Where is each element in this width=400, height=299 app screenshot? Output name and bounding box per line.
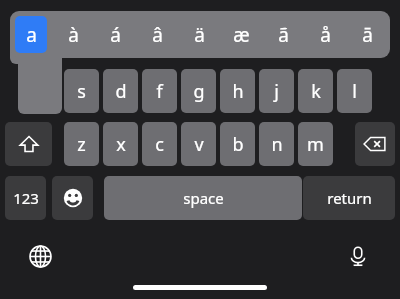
staticText: ã: [278, 22, 289, 48]
staticText: f: [156, 79, 163, 104]
staticText: c: [155, 132, 164, 157]
button[interactable]: j: [259, 69, 294, 113]
button[interactable]: á: [99, 16, 131, 53]
staticText: ä: [194, 22, 205, 48]
button[interactable]: h: [220, 69, 255, 113]
button[interactable]: n: [259, 122, 294, 166]
button[interactable]: l: [337, 69, 372, 113]
button[interactable]: d: [103, 69, 138, 113]
button[interactable]: Next keyboard: [27, 243, 53, 269]
staticText: à: [68, 22, 79, 48]
button[interactable]: Backspace: [355, 122, 395, 166]
button[interactable]: m: [298, 122, 333, 166]
button[interactable]: å: [309, 16, 341, 53]
staticText: space: [183, 188, 224, 208]
button[interactable]: g: [181, 69, 216, 113]
button[interactable]: v: [181, 122, 216, 166]
button[interactable]: f: [142, 69, 177, 113]
staticText: v: [194, 132, 204, 157]
staticText: æ: [233, 22, 250, 48]
button[interactable]: ã: [267, 16, 299, 53]
staticText: â: [152, 22, 163, 48]
button[interactable]: ä: [183, 16, 215, 53]
button[interactable]: Emoji: [52, 176, 93, 220]
button[interactable]: Dictation: [345, 243, 371, 269]
staticText: l: [352, 79, 357, 104]
staticText: b: [232, 132, 244, 157]
button[interactable]: c: [142, 122, 177, 166]
staticText: j: [274, 79, 279, 104]
staticText: z: [77, 132, 86, 157]
button[interactable]: à: [57, 16, 89, 53]
button[interactable]: return: [303, 176, 395, 220]
staticText: m: [307, 132, 324, 157]
staticText: s: [77, 79, 86, 104]
staticText: h: [232, 79, 244, 104]
staticText: k: [311, 79, 321, 104]
button[interactable]: â: [141, 16, 173, 53]
staticText: a: [26, 22, 37, 48]
button[interactable]: 123: [5, 176, 46, 220]
button[interactable]: æ: [225, 16, 257, 53]
staticText: å: [320, 22, 331, 48]
staticText: return: [327, 188, 372, 208]
button[interactable]: space: [104, 176, 302, 220]
button[interactable]: ā: [351, 16, 383, 53]
button[interactable]: b: [220, 122, 255, 166]
button[interactable]: a: [15, 16, 47, 53]
staticText: x: [116, 132, 126, 157]
staticText: 123: [13, 188, 39, 208]
button[interactable]: k: [298, 69, 333, 113]
staticText: g: [193, 79, 205, 104]
button[interactable]: x: [103, 122, 138, 166]
button[interactable]: s: [64, 69, 99, 113]
staticText: n: [271, 132, 283, 157]
staticText: ā: [362, 22, 373, 48]
staticText: á: [110, 22, 121, 48]
staticText: d: [115, 79, 127, 104]
button[interactable]: Shift: [5, 122, 52, 166]
button[interactable]: z: [64, 122, 99, 166]
